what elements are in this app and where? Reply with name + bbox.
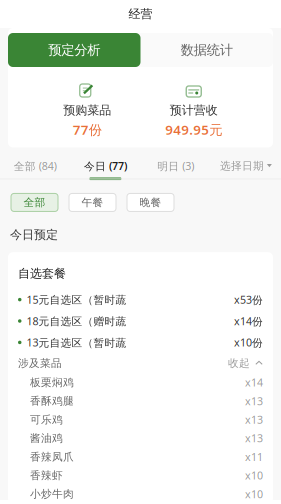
button[interactable]: 午餐 xyxy=(69,193,116,211)
staticText: x14 xyxy=(245,375,263,389)
staticText: 预购菜品 xyxy=(63,103,111,118)
staticText: 晚餐 xyxy=(139,196,161,209)
button[interactable]: 全部 xyxy=(11,193,58,211)
staticText: x14份 xyxy=(234,314,263,328)
button[interactable]: 选择日期 xyxy=(211,147,281,179)
staticText: 18元自选区（赠时蔬 xyxy=(26,314,126,328)
staticText: 午餐 xyxy=(81,196,103,209)
staticText: 预定分析 xyxy=(48,42,100,58)
button[interactable]: 数据统计 xyxy=(140,33,273,67)
staticText: 香酥鸡腿 xyxy=(30,394,74,408)
staticText: x11 xyxy=(245,450,263,464)
staticText: 酱油鸡 xyxy=(30,432,63,445)
button[interactable]: 预定分析 xyxy=(8,33,140,67)
staticText: 板栗焖鸡 xyxy=(30,376,74,389)
staticText: 经营 xyxy=(128,7,152,21)
staticText: x10 xyxy=(245,468,263,482)
staticText: 收起 xyxy=(228,357,250,370)
staticText: 77份 xyxy=(73,121,102,138)
staticText: 小炒牛肉 xyxy=(30,487,74,501)
button[interactable]: 晚餐 xyxy=(127,193,174,211)
staticText: 15元自选区（暂时蔬 xyxy=(26,292,126,307)
staticText: 数据统计 xyxy=(181,42,233,58)
staticText: 香辣虾 xyxy=(30,469,63,482)
staticText: x13 xyxy=(245,394,263,408)
staticText: 可乐鸡 xyxy=(30,413,63,426)
staticText: 涉及菜品 xyxy=(18,357,62,370)
staticText: 今日 (77) xyxy=(84,159,127,173)
staticText: 今日预定 xyxy=(10,227,58,242)
staticText: x10 xyxy=(245,487,263,501)
staticText: x10份 xyxy=(234,335,263,349)
button[interactable]: 全部 (84) xyxy=(0,147,70,179)
staticText: x53份 xyxy=(234,292,263,307)
staticText: 明日 (3) xyxy=(157,159,194,173)
button[interactable]: 涉及菜品 xyxy=(18,353,263,373)
staticText: x13 xyxy=(245,431,263,445)
staticText: x13 xyxy=(245,412,263,427)
staticText: 自选套餐 xyxy=(18,266,66,281)
button[interactable]: 今日 (77) xyxy=(70,147,140,179)
staticText: 13元自选区（暂时蔬 xyxy=(26,335,126,349)
staticText: 选择日期 xyxy=(220,159,264,172)
button[interactable]: 明日 (3) xyxy=(140,147,211,179)
staticText: 香辣凤爪 xyxy=(30,450,74,463)
staticText: 949.95元 xyxy=(165,121,222,138)
staticText: 全部 xyxy=(23,196,45,209)
staticText: 预计营收 xyxy=(170,103,218,118)
staticText: 全部 (84) xyxy=(14,159,57,173)
